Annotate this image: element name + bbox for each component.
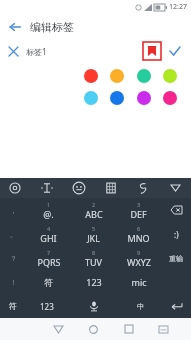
staticText: PQRS: [37, 256, 61, 268]
button[interactable]: 9: [116, 246, 161, 270]
staticText: 2: [92, 201, 96, 208]
staticText: ？: [10, 254, 17, 263]
button[interactable]: 符: [26, 270, 71, 294]
staticText: 123: [86, 276, 102, 288]
button[interactable]: 8: [71, 246, 116, 270]
button[interactable]: Menu: [146, 318, 181, 340]
button[interactable]: 3: [116, 198, 161, 222]
staticText: 5: [92, 225, 96, 232]
staticText: 符: [9, 301, 17, 311]
button[interactable]: Color swatch: [110, 69, 124, 83]
button[interactable]: 6: [116, 222, 161, 246]
button[interactable]: Choose color: [143, 42, 161, 60]
staticText: ，: [10, 206, 17, 215]
button[interactable]: Back: [0, 14, 30, 40]
button[interactable]: Confirm: [163, 40, 187, 62]
staticText: TUV: [85, 256, 102, 268]
button[interactable]: 中: [119, 294, 161, 318]
staticText: 。: [10, 230, 17, 239]
staticText: 12:27: [169, 2, 187, 12]
staticText: ！: [10, 278, 17, 287]
staticText: 4: [47, 225, 51, 232]
button[interactable]: 7: [26, 246, 71, 270]
staticText: 9: [137, 249, 141, 256]
staticText: JKL: [87, 232, 100, 244]
button[interactable]: 123: [26, 294, 68, 318]
button[interactable]: redo: [161, 246, 191, 270]
button[interactable]: smile: [161, 222, 191, 246]
button[interactable]: Color swatch: [163, 69, 177, 83]
button[interactable]: Color swatch: [163, 91, 177, 105]
button[interactable]: cursor: [40, 181, 54, 195]
staticText: 8: [92, 249, 96, 256]
button[interactable]: Color swatch: [110, 91, 124, 105]
button[interactable]: 符: [0, 294, 26, 318]
staticText: 标签1: [26, 46, 47, 57]
button[interactable]: 5: [71, 222, 116, 246]
button[interactable]: 4: [26, 222, 71, 246]
button[interactable]: Color swatch: [84, 69, 98, 83]
staticText: 编辑标签: [30, 20, 74, 34]
button[interactable]: 2: [71, 198, 116, 222]
button[interactable]: Delete label: [0, 40, 26, 62]
staticText: GHI: [40, 232, 57, 244]
staticText: 中: [137, 302, 144, 311]
button[interactable]: Voice input: [68, 294, 119, 318]
staticText: WXYZ: [127, 256, 151, 268]
staticText: @.: [43, 208, 54, 220]
staticText: 3: [137, 201, 141, 208]
staticText: ABC: [85, 208, 103, 220]
button[interactable]: Color swatch: [137, 91, 151, 105]
staticText: 1: [47, 201, 51, 208]
staticText: DEF: [130, 208, 147, 220]
button[interactable]: ！: [0, 270, 26, 294]
button[interactable]: Back: [41, 318, 76, 340]
button[interactable]: backspace: [161, 198, 191, 222]
staticText: 重输: [169, 254, 183, 263]
button[interactable]: Hide keyboard: [165, 178, 185, 198]
staticText: 6: [137, 225, 141, 232]
button[interactable]: Enter: [161, 294, 191, 318]
button[interactable]: mic: [116, 270, 161, 294]
staticText: mic: [131, 276, 147, 288]
button[interactable]: Color swatch: [84, 91, 98, 105]
button[interactable]: grid: [104, 181, 118, 195]
button[interactable]: Home: [76, 318, 111, 340]
button[interactable]: Recents: [111, 318, 146, 340]
staticText: 123: [40, 301, 54, 312]
staticText: :): [174, 229, 179, 240]
button[interactable]: 1: [26, 198, 71, 222]
staticText: 7: [47, 249, 51, 256]
button[interactable]: settings: [8, 181, 22, 195]
button[interactable]: Color swatch: [137, 69, 151, 83]
button[interactable]: ？: [0, 246, 26, 270]
staticText: 符: [44, 277, 53, 288]
staticText: MNO: [127, 232, 150, 244]
button[interactable]: emoji: [72, 181, 86, 195]
button[interactable]: hand: [136, 181, 150, 195]
button[interactable]: 123: [71, 270, 116, 294]
button[interactable]: Delete label: [0, 40, 191, 62]
